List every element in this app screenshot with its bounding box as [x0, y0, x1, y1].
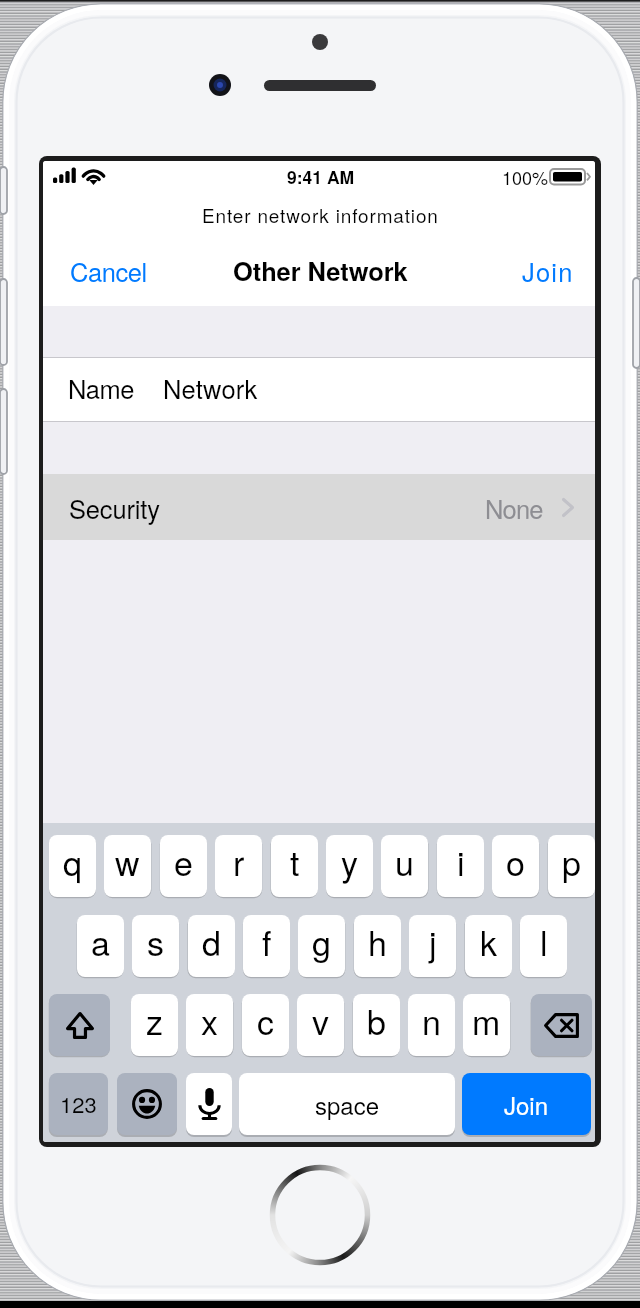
- staticText: d: [202, 917, 221, 966]
- button[interactable]: y: [326, 835, 373, 897]
- staticText: Network: [163, 370, 258, 407]
- staticText: None: [485, 490, 543, 527]
- staticText: Cancel: [70, 253, 147, 290]
- button[interactable]: x: [186, 994, 233, 1056]
- staticText: Security: [69, 490, 160, 527]
- staticText: a: [91, 917, 110, 966]
- button[interactable]: h: [354, 915, 401, 977]
- staticText: Name: [68, 370, 134, 407]
- staticText: Join: [522, 253, 574, 290]
- staticText: u: [395, 837, 414, 886]
- staticText: w: [115, 837, 140, 886]
- staticText: c: [257, 996, 274, 1045]
- staticText: b: [367, 996, 386, 1045]
- button[interactable]: f: [243, 915, 290, 977]
- button[interactable]: w: [104, 835, 151, 897]
- button[interactable]: Backspace: [531, 994, 592, 1056]
- button[interactable]: Name: [43, 358, 595, 421]
- button[interactable]: Security: [43, 474, 595, 540]
- button[interactable]: i: [437, 835, 484, 897]
- button[interactable]: Cancel: [54, 243, 163, 300]
- staticText: g: [312, 917, 331, 966]
- staticText: n: [422, 996, 441, 1045]
- staticText: z: [146, 996, 163, 1045]
- staticText: Join: [504, 1087, 549, 1121]
- staticText: v: [312, 996, 329, 1045]
- staticText: p: [562, 837, 581, 886]
- button[interactable]: Join: [506, 243, 590, 300]
- button[interactable]: g: [298, 915, 345, 977]
- staticText: x: [201, 996, 218, 1045]
- staticText: s: [147, 917, 164, 966]
- button[interactable]: r: [215, 835, 262, 897]
- staticText: space: [315, 1087, 380, 1121]
- staticText: 123: [60, 1088, 97, 1120]
- button[interactable]: p: [548, 835, 595, 897]
- staticText: t: [290, 837, 300, 886]
- button[interactable]: v: [297, 994, 344, 1056]
- button[interactable]: u: [381, 835, 428, 897]
- staticText: 100%: [502, 164, 549, 190]
- button[interactable]: space: [239, 1073, 455, 1135]
- button[interactable]: n: [408, 994, 455, 1056]
- staticText: y: [341, 837, 358, 886]
- staticText: h: [368, 917, 387, 966]
- staticText: Other Network: [233, 252, 408, 289]
- button[interactable]: l: [520, 915, 567, 977]
- button[interactable]: o: [492, 835, 539, 897]
- button[interactable]: a: [77, 915, 124, 977]
- staticText: k: [480, 917, 497, 966]
- button[interactable]: k: [465, 915, 512, 977]
- staticText: 9:41 AM: [287, 164, 355, 189]
- button[interactable]: e: [160, 835, 207, 897]
- button[interactable]: Shift: [49, 994, 110, 1056]
- button[interactable]: s: [132, 915, 179, 977]
- button[interactable]: j: [409, 915, 456, 977]
- button[interactable]: Join: [462, 1073, 591, 1135]
- button[interactable]: z: [131, 994, 178, 1056]
- staticText: j: [429, 917, 437, 966]
- staticText: m: [472, 996, 501, 1045]
- button[interactable]: t: [271, 835, 318, 897]
- button[interactable]: q: [49, 835, 96, 897]
- button[interactable]: Emoji: [117, 1073, 177, 1135]
- staticText: l: [540, 917, 548, 966]
- staticText: r: [233, 837, 245, 886]
- staticText: Enter network information: [202, 201, 439, 228]
- staticText: f: [262, 917, 272, 966]
- button[interactable]: m: [463, 994, 510, 1056]
- button[interactable]: Dictation: [186, 1073, 232, 1135]
- button[interactable]: 123: [49, 1073, 108, 1135]
- staticText: i: [457, 837, 465, 886]
- button[interactable]: d: [188, 915, 235, 977]
- staticText: e: [174, 837, 193, 886]
- staticText: o: [506, 837, 525, 886]
- button[interactable]: b: [353, 994, 400, 1056]
- staticText: q: [63, 837, 82, 886]
- button[interactable]: c: [242, 994, 289, 1056]
